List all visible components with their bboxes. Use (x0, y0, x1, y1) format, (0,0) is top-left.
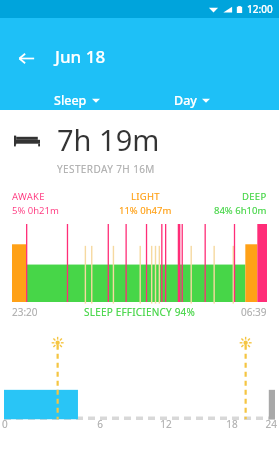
button[interactable]: Sleep (52, 90, 102, 111)
button[interactable]: Back (12, 44, 40, 72)
staticText: 18 (199, 417, 265, 431)
staticText: 84% 6h10m (214, 204, 267, 217)
staticText: 0 (2, 417, 67, 431)
staticText: 12 (133, 417, 199, 431)
staticText: 6 (67, 417, 133, 431)
staticText: YESTERDAY 7H 16M (57, 162, 155, 176)
staticText: 23:20 (12, 305, 38, 319)
staticText: Day (174, 92, 197, 109)
staticText: Sleep (54, 92, 87, 109)
staticText: LIGHT (131, 190, 160, 203)
staticText: 06:39 (241, 305, 267, 319)
staticText: 7h 19m (57, 120, 160, 159)
staticText: 11% 0h47m (119, 204, 172, 217)
staticText: 12:00 (247, 2, 273, 16)
staticText: SLEEP EFFICIENCY 94% (84, 305, 196, 319)
staticText: 24 (265, 417, 277, 431)
staticText: DEEP (242, 190, 267, 203)
staticText: Jun 18 (55, 45, 106, 68)
button[interactable]: Jun 18 (55, 45, 106, 68)
staticText: AWAKE (12, 190, 45, 203)
button[interactable]: Day (172, 90, 212, 111)
staticText: 5% 0h21m (12, 204, 59, 217)
